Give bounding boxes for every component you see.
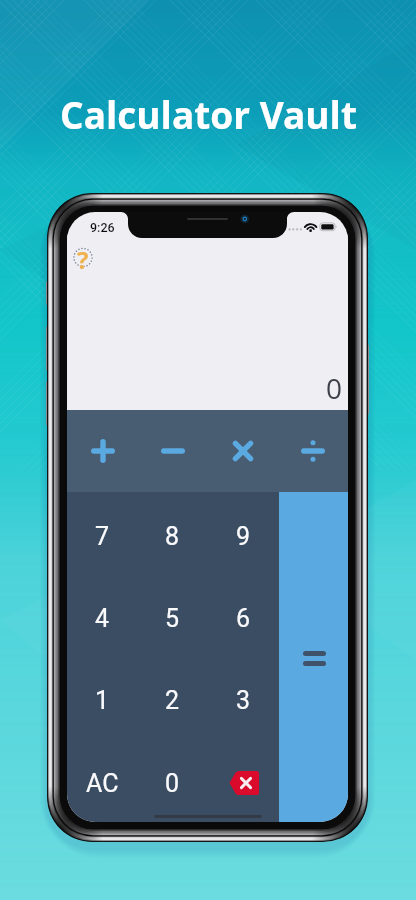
button[interactable]: 2 (137, 656, 208, 739)
button[interactable]: 3 (208, 656, 279, 739)
button[interactable]: Help (69, 242, 97, 270)
staticText: 5 (165, 604, 180, 633)
staticText: AC (86, 769, 119, 798)
button[interactable]: 4 (67, 574, 137, 656)
staticText: 2 (165, 686, 180, 715)
button[interactable]: multiply (208, 410, 278, 492)
staticText: 7 (95, 522, 110, 551)
staticText: 9:26 (90, 220, 115, 235)
button[interactable]: divide (278, 410, 348, 492)
staticText: 9 (236, 522, 251, 551)
button[interactable]: AC (67, 739, 137, 822)
staticText: 8 (165, 522, 180, 551)
button[interactable]: 9 (208, 492, 279, 574)
button[interactable]: 0 (137, 739, 208, 822)
staticText: 0 (326, 369, 343, 407)
button[interactable]: 8 (137, 492, 208, 574)
button[interactable]: plus (67, 410, 138, 492)
staticText: 1 (95, 686, 110, 715)
button[interactable]: 7 (67, 492, 137, 574)
staticText: 6 (236, 604, 251, 633)
staticText: Calculator Vault (60, 89, 357, 139)
button[interactable]: minus (138, 410, 208, 492)
button[interactable]: 1 (67, 656, 137, 739)
button[interactable]: 5 (137, 574, 208, 656)
staticText: ? (77, 243, 89, 271)
staticText: 0 (165, 769, 180, 798)
button[interactable]: Delete (208, 739, 279, 822)
staticText: 4 (95, 604, 110, 633)
button[interactable]: equals (279, 492, 348, 822)
button[interactable]: 6 (208, 574, 279, 656)
staticText: 3 (236, 686, 251, 715)
